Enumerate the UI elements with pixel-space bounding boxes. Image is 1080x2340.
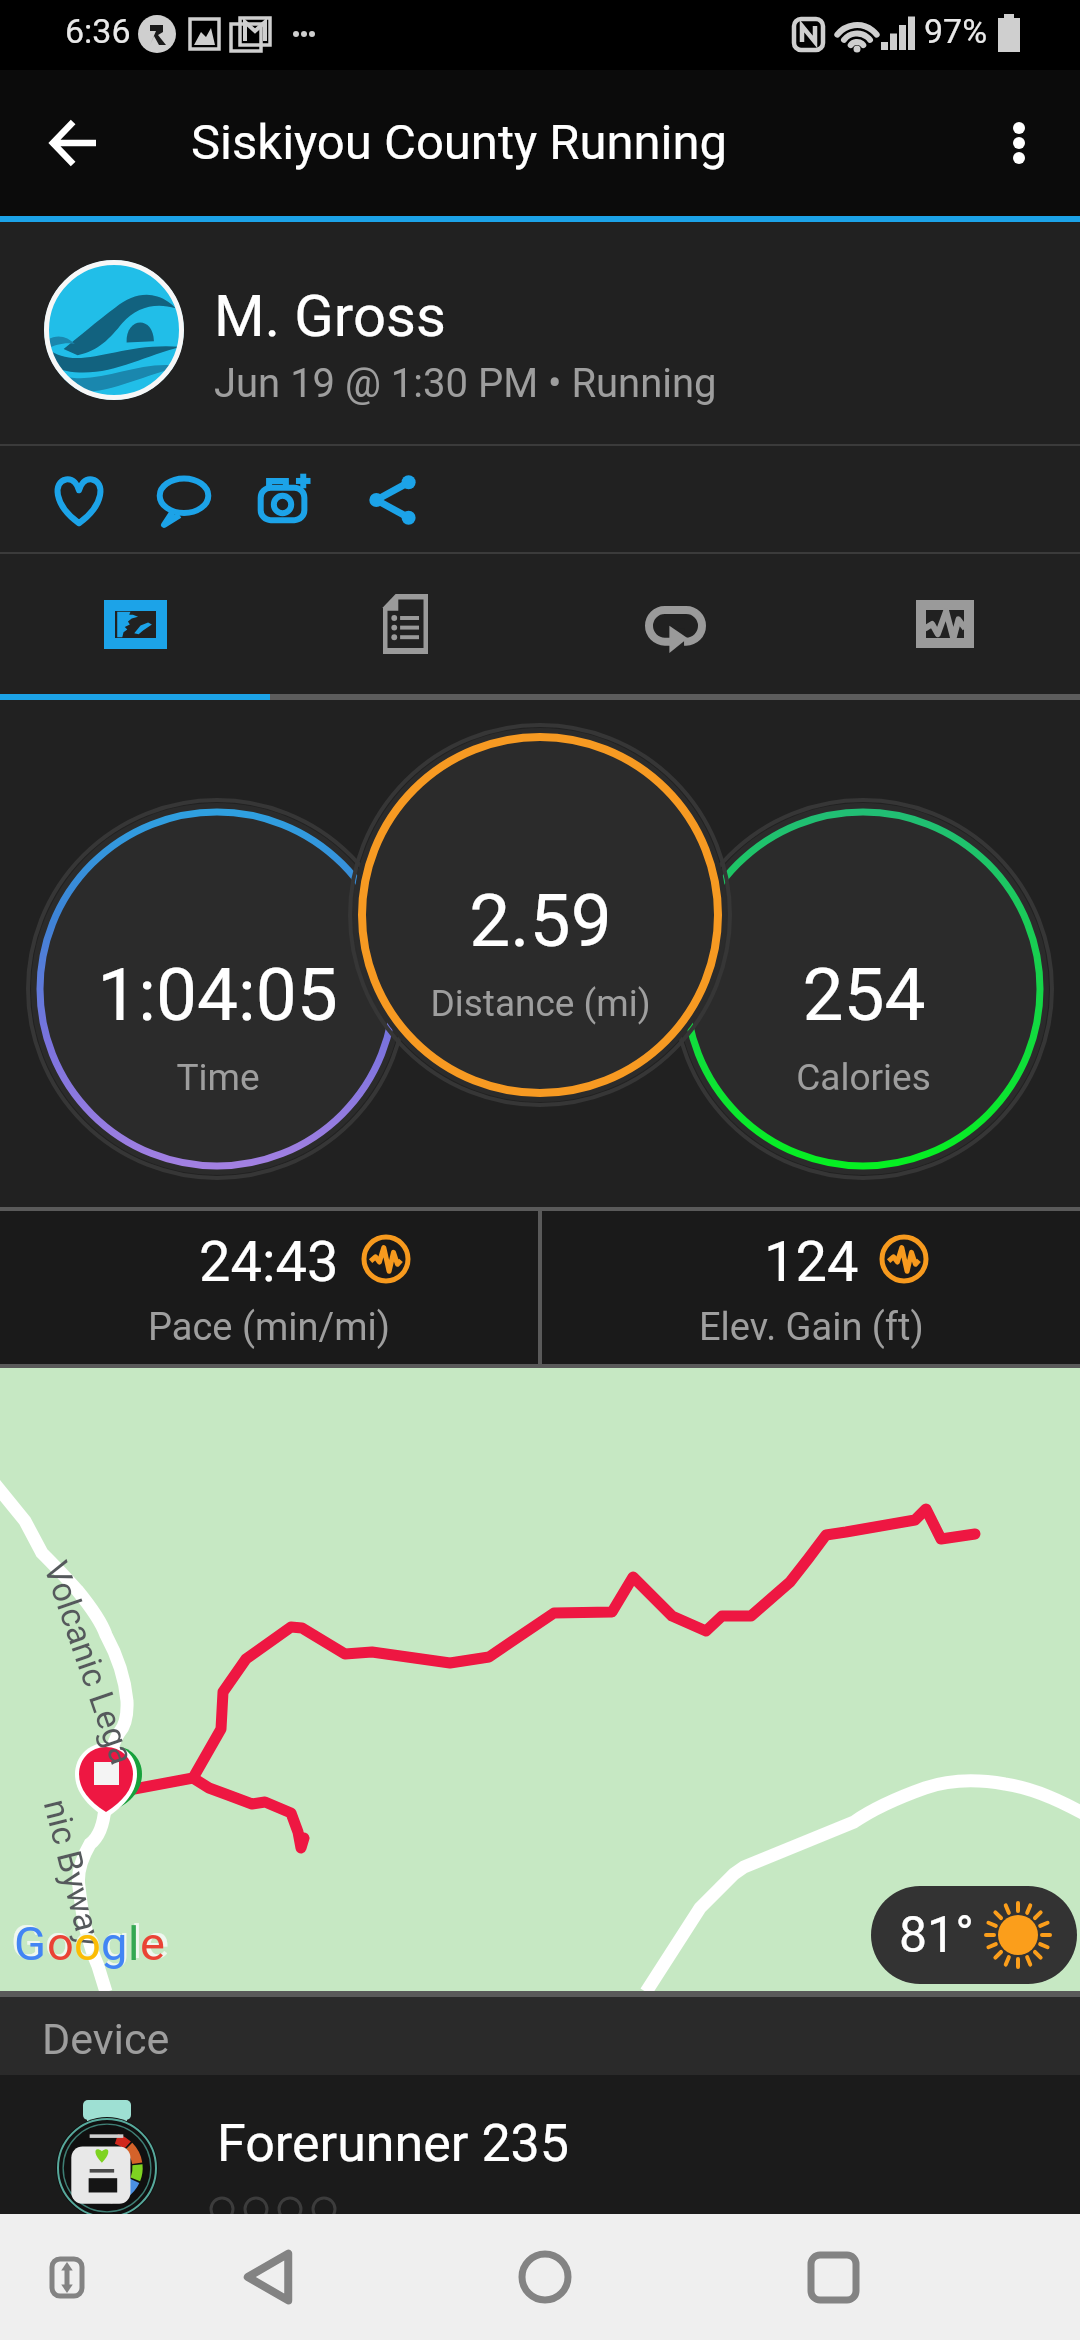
button[interactable]: Comment <box>155 471 213 529</box>
staticText: 81° <box>899 1906 974 1965</box>
staticText: e <box>140 1916 165 1971</box>
staticText: e <box>144 1914 171 1969</box>
staticText: 124 <box>764 1229 859 1295</box>
button[interactable]: 124 <box>542 1211 1080 1364</box>
staticText: Calories <box>796 1056 931 1099</box>
button[interactable]: 254 <box>643 952 1080 1132</box>
staticText: o <box>45 1914 74 1969</box>
button[interactable]: Home <box>402 2214 688 2340</box>
button[interactable]: Navigate up <box>29 98 119 188</box>
staticText: o <box>74 1916 101 1971</box>
button[interactable]: M. Gross <box>0 222 1080 444</box>
button[interactable]: Share <box>364 471 422 529</box>
button[interactable]: Map <box>0 554 270 694</box>
staticText: Device <box>42 2014 170 2064</box>
staticText: 1:04:05 <box>97 952 338 1038</box>
button[interactable]: Laps <box>540 554 810 694</box>
staticText: 2.59 <box>469 878 612 964</box>
staticText: G <box>11 1914 45 1969</box>
staticText: G <box>14 1916 47 1971</box>
button[interactable]: Forerunner 235 <box>0 2075 1080 2214</box>
staticText: o <box>74 1914 103 1969</box>
staticText: g <box>103 1914 131 1969</box>
button[interactable]: Details <box>270 554 540 694</box>
staticText: g <box>101 1916 128 1971</box>
staticText: o <box>47 1916 74 1971</box>
button[interactable]: Charts <box>810 554 1080 694</box>
staticText: Pace (min/mi) <box>148 1305 390 1350</box>
staticText: 97% <box>924 11 988 51</box>
button[interactable]: Back <box>134 2214 402 2340</box>
staticText: 6:36 <box>65 11 131 51</box>
staticText: 24:43 <box>199 1229 339 1295</box>
staticText: Time <box>176 1056 260 1099</box>
button[interactable]: 24:43 <box>0 1211 538 1364</box>
staticText: l <box>131 1914 144 1969</box>
button[interactable]: Like <box>50 471 108 529</box>
staticText: Siskiyou County Running <box>191 114 728 171</box>
staticText: 254 <box>802 952 926 1038</box>
staticText: Volcanic Lega <box>36 1556 143 1770</box>
button[interactable]: More options <box>974 98 1064 188</box>
button[interactable]: 81° <box>871 1886 1077 1984</box>
staticText: Jun 19 @ 1:30 PM • Running <box>214 360 717 407</box>
button[interactable]: Recent apps <box>688 2214 978 2340</box>
staticText: M. Gross <box>214 282 446 350</box>
staticText: Distance (mi) <box>430 982 651 1025</box>
button[interactable]: 2.59 <box>320 878 760 1058</box>
staticText: Forerunner 235 <box>217 2113 570 2174</box>
staticText: Elev. Gain (ft) <box>699 1305 924 1350</box>
staticText: l <box>128 1916 140 1971</box>
button[interactable]: Add photo <box>258 471 316 529</box>
staticText: nic Byway <box>36 1795 111 1951</box>
button[interactable]: Rotate screen <box>0 2214 134 2340</box>
button[interactable]: 1:04:05 <box>0 952 437 1132</box>
